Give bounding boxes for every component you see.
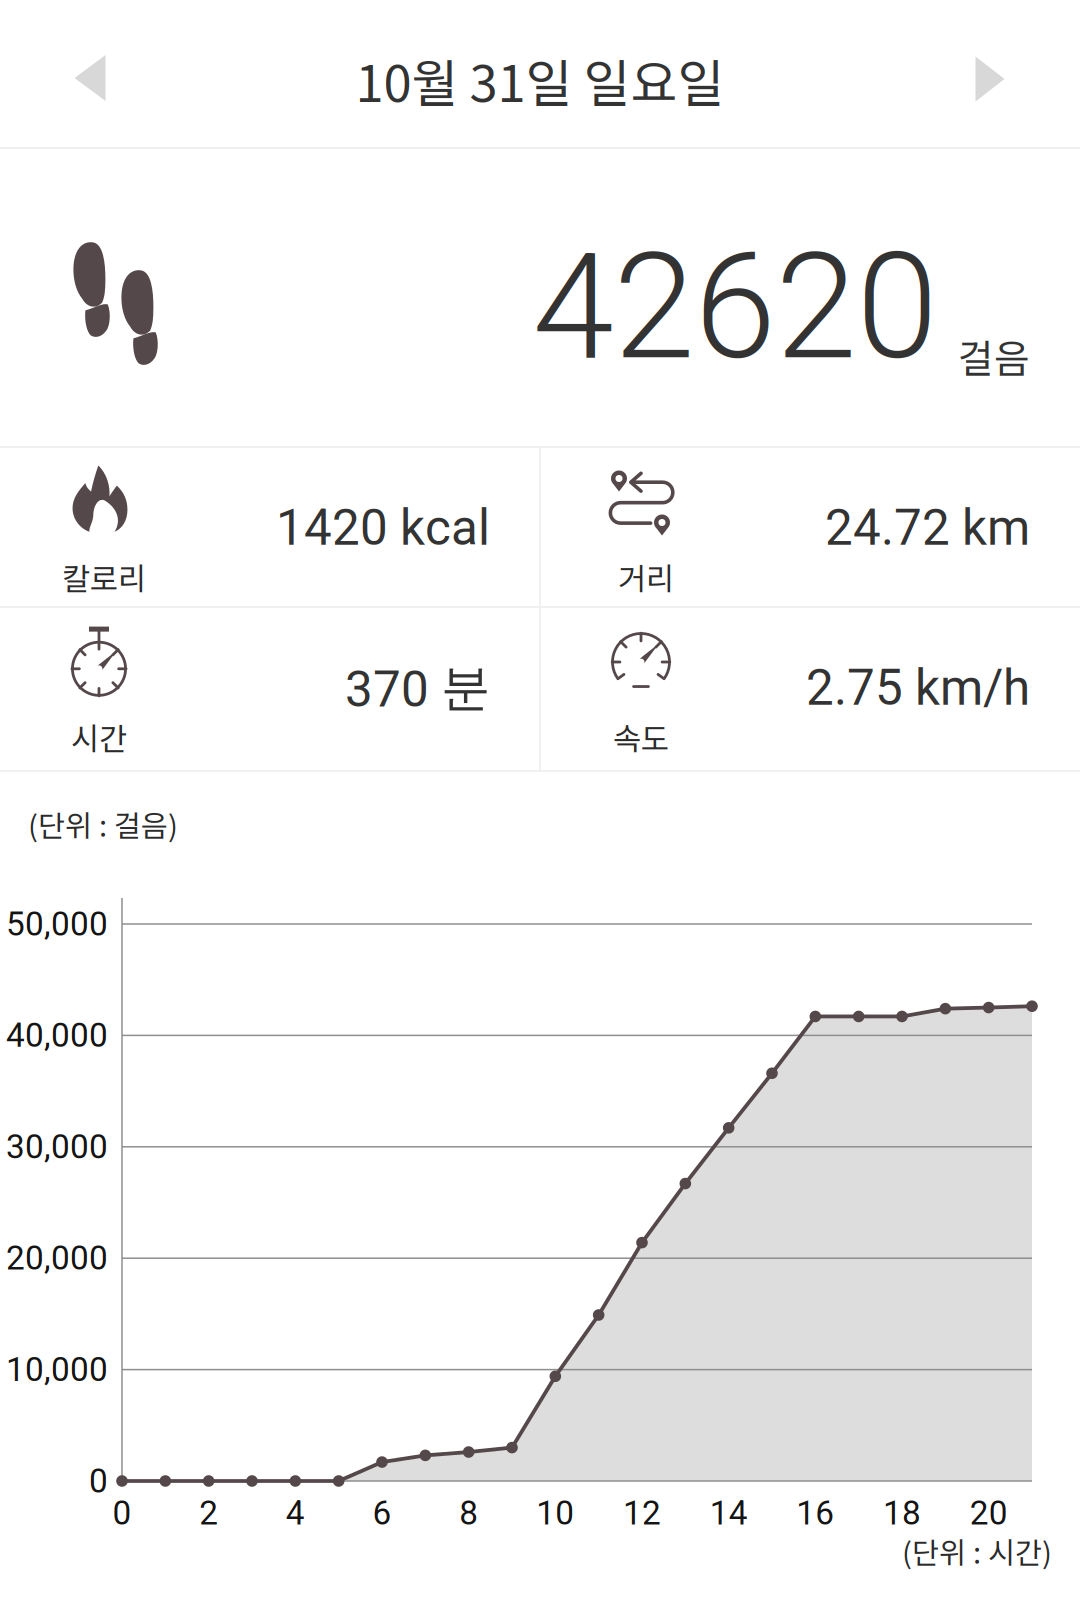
staticText: 1420 kcal <box>276 499 490 557</box>
staticText: 속도 <box>613 715 669 759</box>
button[interactable]: Previous day <box>15 8 165 148</box>
staticText: 0 <box>89 1461 108 1501</box>
staticText: 시간 <box>71 715 127 759</box>
staticText: 42620 <box>532 221 937 393</box>
staticText: 30,000 <box>6 1127 108 1166</box>
staticText: 2 <box>199 1493 218 1533</box>
staticText: 걸음 <box>958 328 1030 384</box>
staticText: 8 <box>459 1493 478 1533</box>
staticText: 14 <box>710 1493 748 1533</box>
staticText: (단위 : 시간) <box>902 1530 1052 1572</box>
staticText: 16 <box>796 1493 834 1533</box>
staticText: 4 <box>286 1493 305 1533</box>
button[interactable]: Next day <box>915 9 1065 149</box>
staticText: 2.75 km/h <box>806 659 1030 717</box>
staticText: 20,000 <box>6 1239 108 1278</box>
staticText: 0 <box>112 1493 131 1533</box>
staticText: 12 <box>623 1493 661 1533</box>
staticText: 24.72 km <box>825 499 1030 557</box>
staticText: 20 <box>970 1493 1008 1533</box>
staticText: (단위 : 걸음) <box>28 803 178 845</box>
staticText: 10월 31일 일요일 <box>355 43 724 117</box>
staticText: 40,000 <box>6 1016 108 1055</box>
staticText: 칼로리 <box>62 555 146 599</box>
staticText: 10,000 <box>6 1350 108 1389</box>
staticText: 6 <box>372 1493 391 1533</box>
staticText: 18 <box>883 1493 921 1533</box>
staticText: 50,000 <box>6 904 108 944</box>
staticText: 10 <box>536 1493 574 1533</box>
staticText: 거리 <box>618 555 674 599</box>
staticText: 370 분 <box>345 657 490 719</box>
